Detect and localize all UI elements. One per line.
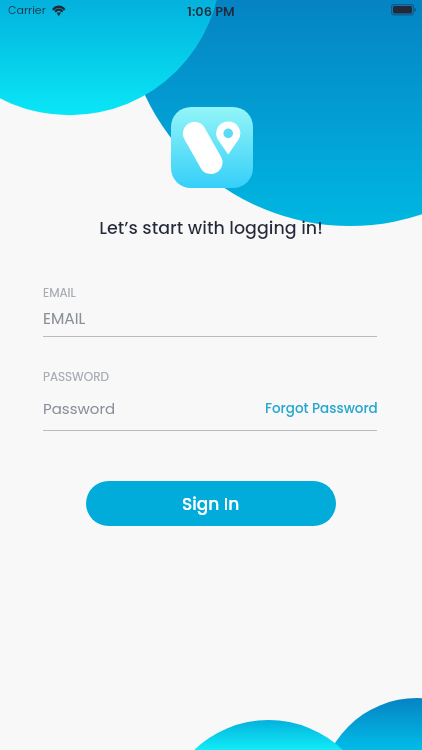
staticText: Forgot Password [265, 399, 378, 418]
staticText: Carrier [8, 2, 46, 17]
staticText: EMAIL [43, 284, 76, 301]
other: Battery [390, 3, 418, 17]
staticText: Let’s start with logging in! [0, 216, 422, 241]
button[interactable]: Forgot Password [260, 396, 383, 421]
staticText: Password [43, 398, 116, 419]
staticText: PASSWORD [43, 368, 110, 385]
staticText: Sign In [182, 492, 240, 516]
other: Wi-Fi [49, 1, 68, 19]
staticText: 1:06 PM [0, 2, 422, 20]
button[interactable]: Sign In [86, 481, 336, 526]
staticText: EMAIL [43, 308, 86, 330]
